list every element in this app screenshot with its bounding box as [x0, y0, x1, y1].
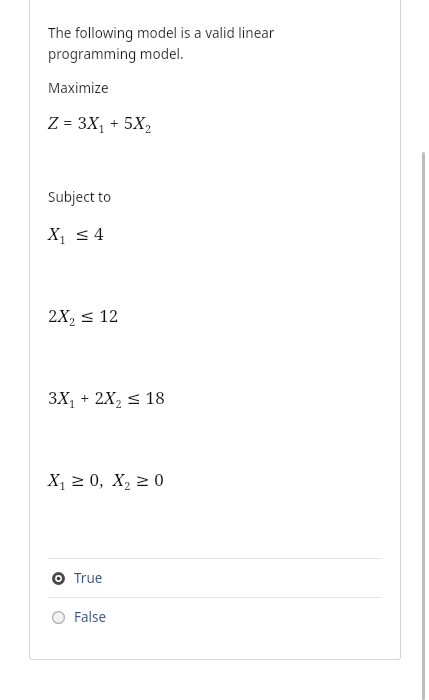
staticText: Maximize — [48, 79, 109, 97]
staticText: 2X2 ≤ 12 — [48, 304, 119, 329]
staticText: 3X1 + 2X2 ≤ 18 — [48, 386, 165, 411]
button[interactable]: False — [48, 598, 382, 636]
staticText: False — [74, 608, 107, 626]
staticText: X1 ≥ 0, X2 ≥ 0 — [48, 468, 165, 493]
staticText: Z = 3X1 + 5X2 — [48, 111, 152, 136]
staticText: The following model is a valid linear pr… — [48, 24, 275, 63]
staticText: Subject to — [48, 188, 112, 206]
button[interactable]: True — [48, 559, 382, 597]
staticText: True — [74, 569, 103, 587]
staticText: X1 ≤ 4 — [48, 222, 104, 247]
